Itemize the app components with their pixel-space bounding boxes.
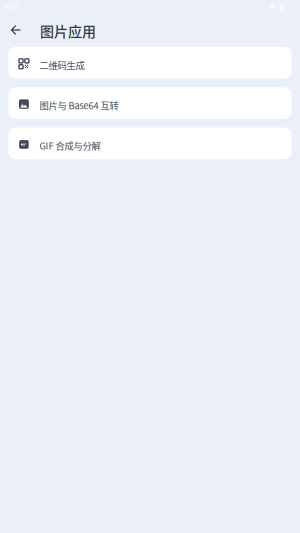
staticText: 图片与 Base64 互转 [39, 98, 118, 112]
staticText: GIF 合成与分解 [39, 139, 100, 152]
staticText: 图片应用 [40, 20, 96, 41]
button[interactable]: GIF 合成与分解 [8, 128, 291, 159]
button[interactable]: 二维码生成 [8, 47, 291, 78]
button[interactable]: 图片与 Base64 互转 [8, 87, 291, 119]
button[interactable]: Back [5, 19, 26, 41]
staticText: 二维码生成 [39, 58, 84, 72]
staticText: 4:01 [4, 2, 19, 11]
